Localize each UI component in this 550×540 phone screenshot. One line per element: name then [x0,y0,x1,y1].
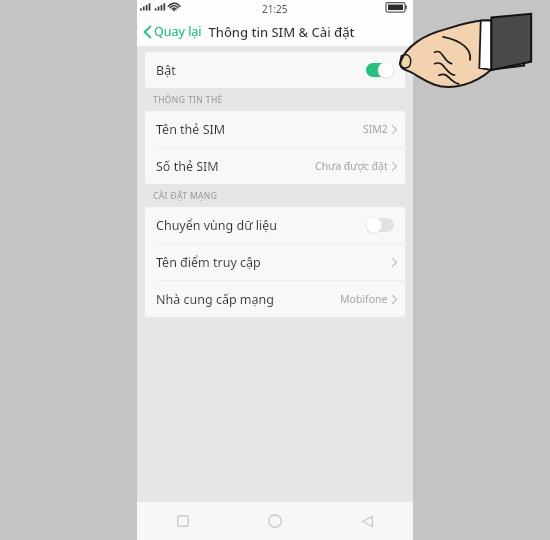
button[interactable]: Số thẻ SIM [145,148,405,184]
button[interactable]: Tên điểm truy cập [145,244,405,280]
staticText: Tên thẻ SIM [156,121,226,138]
staticText: Thông tin SIM & Cài đặt [208,23,355,41]
button[interactable]: Quay lại [137,19,208,44]
staticText: SIM2 [363,122,388,136]
staticText: CÀI ĐẶT MẠNG [153,190,218,202]
staticText: Mobifone [340,292,388,306]
button[interactable]: Toggle on [365,61,395,79]
button[interactable]: Nhà cung cấp mạng [145,281,405,317]
button[interactable]: Toggle off [365,216,395,234]
staticText: Bật [156,62,176,79]
button[interactable]: Bật [145,52,405,88]
staticText: Nhà cung cấp mạng [156,291,274,308]
button[interactable]: Tên thẻ SIM [145,111,405,147]
button[interactable]: Home [229,502,321,540]
staticText: Chuyển vùng dữ liệu [156,217,278,234]
button[interactable]: Chuyển vùng dữ liệu [145,207,405,243]
button[interactable]: Back [321,502,413,540]
staticText: Số thẻ SIM [156,158,219,175]
staticText: Tên điểm truy cập [156,254,261,271]
staticText: Quay lại [154,23,202,40]
staticText: Chưa được đặt [315,159,388,173]
staticText: THÔNG TIN THẺ [153,94,223,106]
button[interactable]: Recent apps [137,502,229,540]
staticText: 21:25 [262,2,288,16]
